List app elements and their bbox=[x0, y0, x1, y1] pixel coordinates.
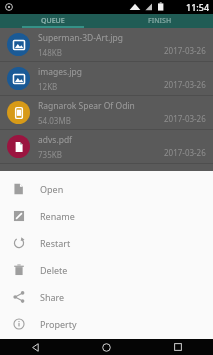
staticText: Share bbox=[40, 291, 65, 303]
staticText: advs.pdf bbox=[38, 134, 73, 146]
staticText: 148KB bbox=[38, 47, 62, 58]
button[interactable]: Share bbox=[0, 283, 213, 310]
button[interactable]: Superman-3D-Art.jpg bbox=[0, 28, 213, 61]
button[interactable]: images.jpg bbox=[0, 62, 213, 95]
button[interactable]: Ragnarok Spear Of Odin bbox=[0, 96, 213, 129]
staticText: Delete bbox=[40, 264, 68, 276]
button[interactable]: QUEUE bbox=[0, 14, 106, 28]
staticText: images.jpg bbox=[38, 66, 82, 78]
button[interactable]: FINISH bbox=[106, 14, 213, 28]
button[interactable]: Property bbox=[0, 310, 213, 337]
staticText: 735KB bbox=[38, 149, 62, 160]
staticText: 2017-03-26 bbox=[164, 113, 206, 124]
staticText: FINISH bbox=[148, 16, 172, 26]
staticText: Open bbox=[40, 183, 64, 195]
staticText: Restart bbox=[40, 237, 71, 249]
staticText: QUEUE bbox=[41, 16, 65, 26]
staticText: 12KB bbox=[38, 81, 58, 92]
staticText: 54.03MB bbox=[38, 115, 71, 126]
staticText: Superman-3D-Art.jpg bbox=[38, 32, 123, 44]
staticText: Ragnarok Spear Of Odin bbox=[38, 100, 135, 112]
staticText: Property bbox=[40, 318, 77, 330]
staticText: 11:54 bbox=[186, 1, 210, 13]
button[interactable]: Rename bbox=[0, 202, 213, 229]
button[interactable]: Restart bbox=[0, 229, 213, 256]
staticText: 2017-03-26 bbox=[164, 147, 206, 158]
button[interactable]: Back bbox=[0, 339, 71, 355]
staticText: Rename bbox=[40, 210, 75, 222]
button[interactable]: Open bbox=[0, 175, 213, 202]
staticText: 2017-03-26 bbox=[164, 45, 206, 56]
button[interactable]: Delete bbox=[0, 256, 213, 283]
button[interactable]: advs.pdf bbox=[0, 130, 213, 163]
staticText: 2017-03-26 bbox=[164, 79, 206, 90]
button[interactable]: Recent apps bbox=[142, 339, 213, 355]
button[interactable]: Home bbox=[71, 339, 142, 355]
